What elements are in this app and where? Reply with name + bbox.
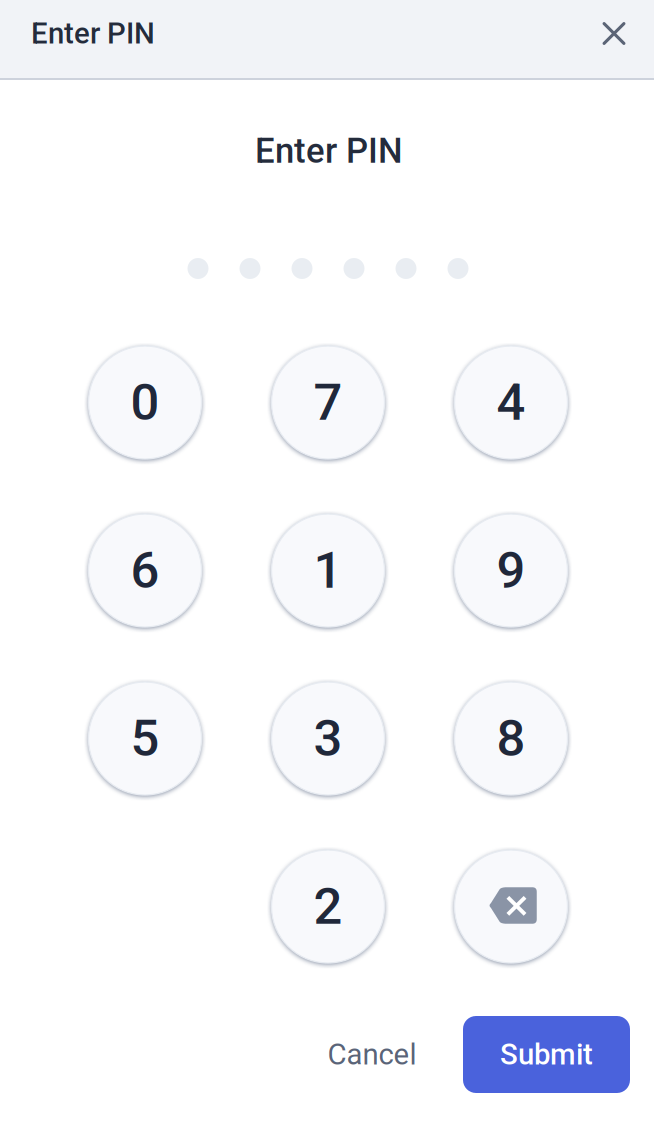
button[interactable]: Submit [463, 1016, 630, 1093]
button[interactable]: 1 [271, 514, 384, 627]
button[interactable]: 8 [454, 682, 567, 795]
staticText: 8 [496, 709, 525, 768]
staticText: Enter PIN [31, 16, 155, 51]
staticText: 9 [496, 541, 525, 600]
button[interactable]: Cancel [316, 1023, 428, 1085]
staticText: 5 [130, 709, 159, 768]
button[interactable]: 4 [454, 346, 567, 459]
staticText: Cancel [327, 1037, 416, 1072]
staticText: 2 [313, 877, 342, 936]
button[interactable]: 9 [454, 514, 567, 627]
button[interactable]: 3 [271, 682, 384, 795]
staticText: 4 [496, 373, 525, 432]
staticText: 1 [313, 541, 342, 600]
button[interactable]: Delete [454, 850, 567, 963]
button[interactable]: 6 [88, 514, 201, 627]
button[interactable]: 2 [271, 850, 384, 963]
staticText: 6 [130, 541, 159, 600]
button[interactable]: Close [592, 11, 636, 55]
button[interactable]: 5 [88, 682, 201, 795]
staticText: 7 [313, 373, 342, 432]
staticText: 3 [313, 709, 342, 768]
staticText: 0 [130, 373, 159, 432]
staticText: Enter PIN [255, 131, 403, 171]
button[interactable]: 0 [88, 346, 201, 459]
staticText: Submit [500, 1037, 593, 1072]
button[interactable]: 7 [271, 346, 384, 459]
